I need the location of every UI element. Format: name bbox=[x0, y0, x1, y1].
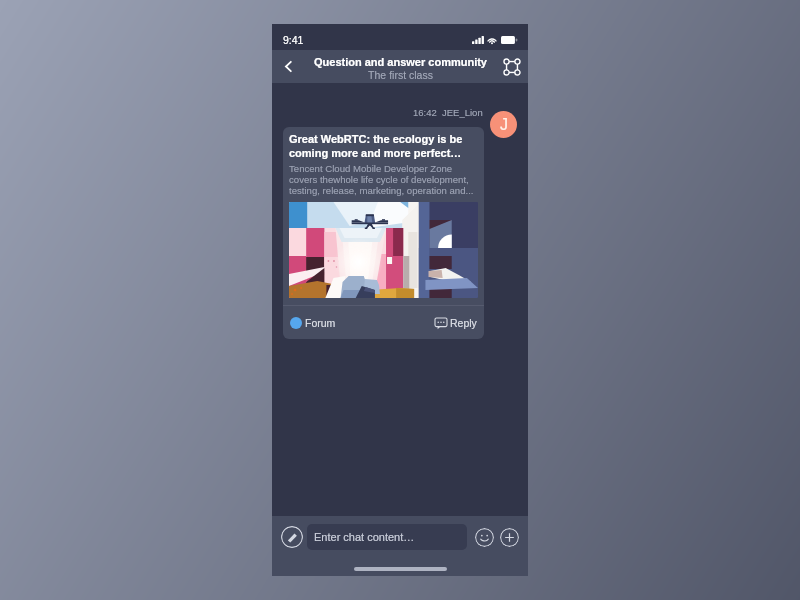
button[interactable]: Group members bbox=[496, 50, 528, 83]
button[interactable]: Back bbox=[272, 50, 304, 83]
staticText: 9:41 bbox=[283, 34, 304, 46]
staticText: 16:42 bbox=[413, 107, 437, 118]
staticText: J bbox=[500, 116, 508, 134]
staticText: Great WebRTC: the ecology is be coming m… bbox=[289, 133, 463, 159]
button[interactable]: Add attachment bbox=[500, 528, 519, 547]
staticText: JEE_Lion bbox=[442, 107, 483, 118]
button[interactable]: Voice message bbox=[281, 526, 303, 548]
button[interactable]: JEE_Lion avatar bbox=[490, 111, 517, 138]
button[interactable]: Enter chat content… bbox=[307, 524, 467, 550]
staticText: Forum bbox=[305, 317, 336, 329]
staticText: Tencent Cloud Mobile Developer Zone cove… bbox=[289, 163, 478, 196]
staticText: Reply bbox=[450, 317, 477, 329]
button[interactable]: Emoji bbox=[475, 528, 494, 547]
staticText: The first class bbox=[368, 69, 433, 81]
staticText: Question and answer community bbox=[314, 56, 487, 68]
staticText: Enter chat content… bbox=[314, 531, 415, 543]
button[interactable]: Great WebRTC: the ecology is be coming m… bbox=[283, 127, 484, 339]
